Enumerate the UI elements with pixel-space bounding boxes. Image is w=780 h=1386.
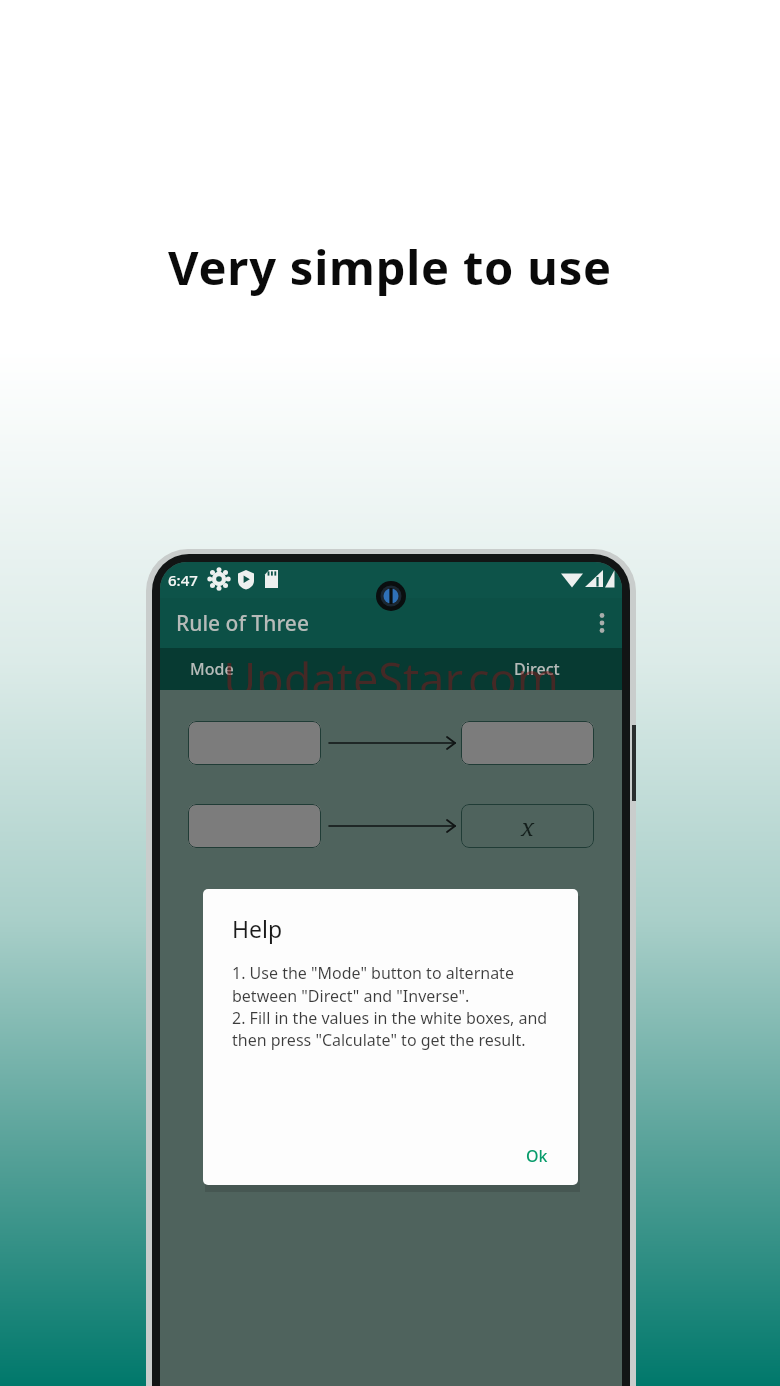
button[interactable] (188, 804, 321, 848)
staticText: UpdateStar.com (160, 648, 622, 690)
staticText: x (521, 810, 535, 843)
button[interactable] (461, 721, 594, 765)
staticText: Very simple to use (0, 235, 780, 299)
button[interactable] (188, 721, 321, 765)
staticText: Help (232, 913, 283, 944)
button[interactable]: Ok (516, 1139, 558, 1173)
button[interactable]: x (461, 804, 594, 848)
staticText: Rule of Three (176, 609, 309, 638)
staticText: 1. Use the "Mode" button to alternate be… (232, 962, 558, 1050)
button[interactable]: More options (578, 601, 622, 645)
staticText: Ok (526, 1145, 548, 1167)
staticText: Mode (190, 658, 234, 680)
staticText: 6:47 (168, 570, 198, 590)
button[interactable]: Direct (514, 658, 560, 680)
staticText: Direct (514, 658, 560, 680)
button[interactable]: Mode (190, 658, 234, 680)
button[interactable]: Rule of Three (160, 598, 622, 648)
